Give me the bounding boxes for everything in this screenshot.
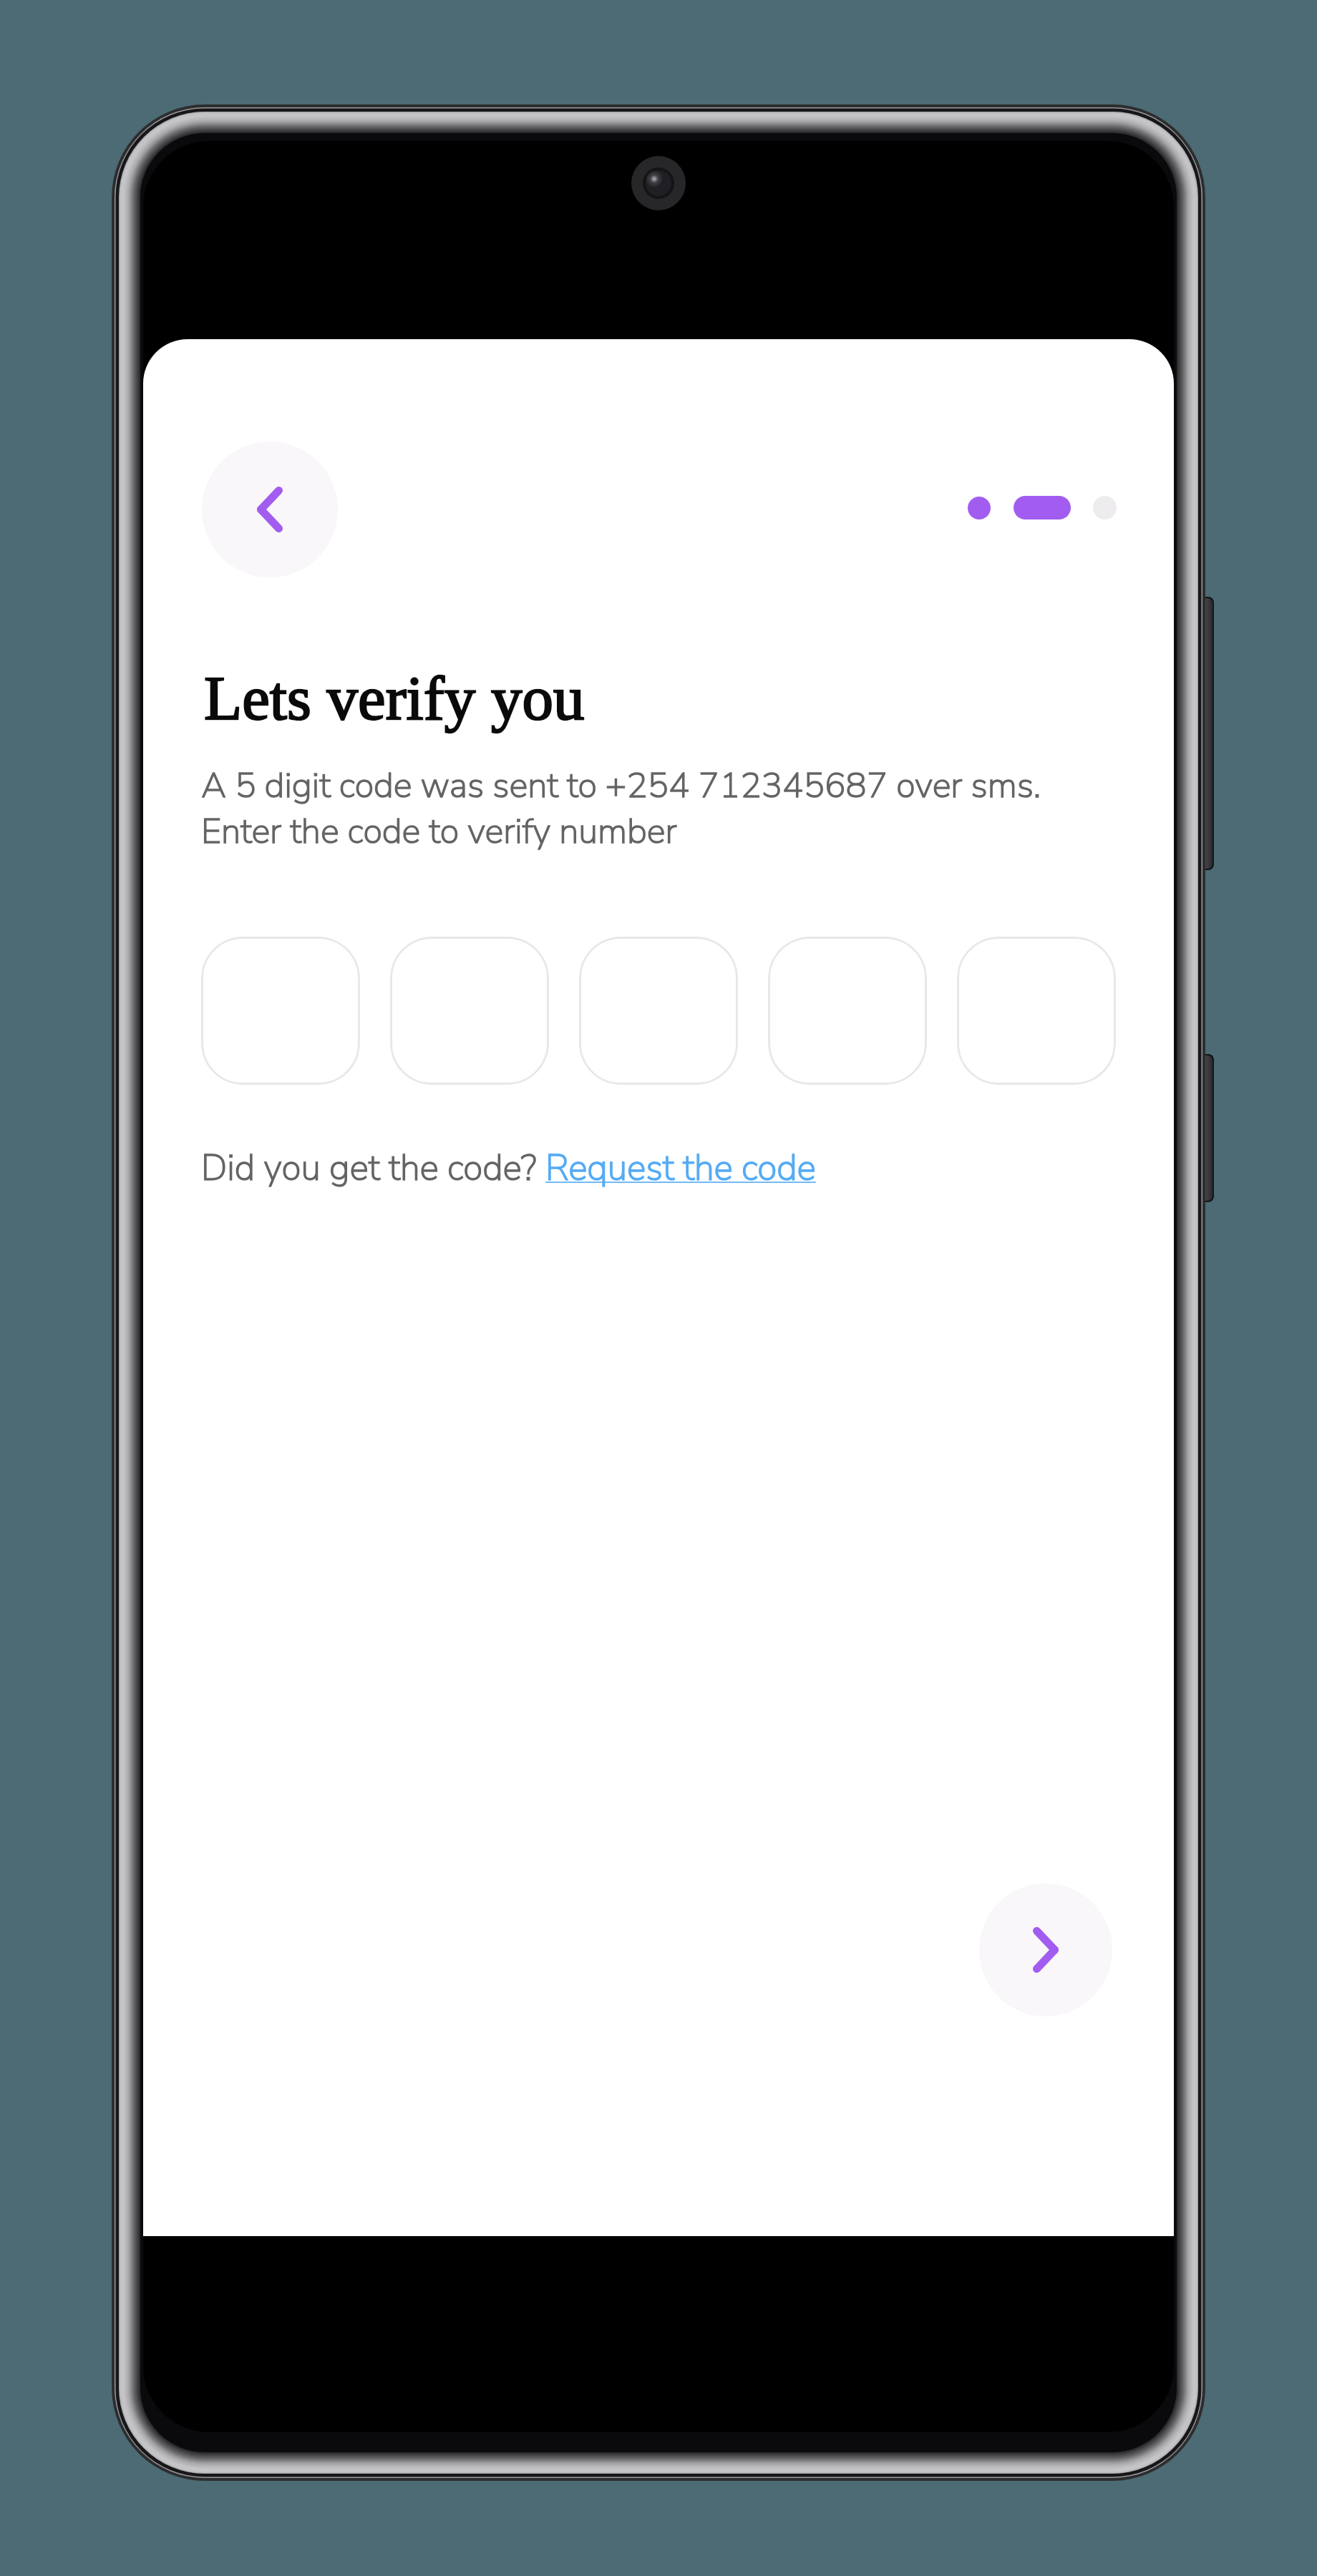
button[interactable]: Code digit: [957, 937, 1116, 1085]
staticText: Request the code: [545, 1143, 816, 1192]
staticText: Lets verify you: [204, 663, 585, 732]
staticText: A 5 digit code was sent to +254 71234568…: [201, 761, 1041, 855]
button[interactable]: Code digit: [579, 937, 738, 1085]
button[interactable]: Next: [979, 1883, 1112, 2016]
button[interactable]: Code digit: [390, 937, 549, 1085]
staticText: Request the code: [545, 1143, 816, 1192]
button[interactable]: Back: [202, 441, 338, 577]
staticText: A 5 digit code was sent to +254 71234568…: [201, 761, 1041, 855]
staticText: Lets verify you: [204, 663, 585, 732]
button[interactable]: Request the code: [545, 1143, 816, 1192]
button[interactable]: Code digit: [201, 937, 360, 1085]
staticText: Did you get the code?: [201, 1143, 545, 1192]
staticText: Did you get the code?: [201, 1143, 545, 1192]
button[interactable]: Code digit: [768, 937, 927, 1085]
